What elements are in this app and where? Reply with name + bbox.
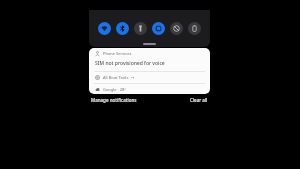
staticText: Manage notifications: [91, 97, 137, 103]
button[interactable]: Bluetooth: [116, 22, 129, 35]
button[interactable]: Manage notifications: [89, 94, 139, 106]
staticText: →: [131, 75, 135, 80]
button[interactable]: Flashlight: [134, 22, 147, 35]
button[interactable]: Wi-Fi: [98, 22, 111, 35]
button[interactable]: All Boot Tools: [89, 72, 210, 83]
button[interactable]: Google · 28°: [89, 84, 210, 94]
staticText: Phone Services: [103, 51, 132, 56]
staticText: SIM not provisioned for voice: [95, 60, 165, 67]
button[interactable]: Clear all: [188, 94, 210, 106]
staticText: Clear all: [190, 97, 208, 103]
button[interactable]: Battery saver: [188, 22, 201, 35]
button[interactable]: Do not disturb: [170, 22, 183, 35]
staticText: All Boot Tools: [103, 75, 129, 80]
button[interactable]: Phone Services: [89, 48, 210, 71]
staticText: Google · 28°: [103, 87, 126, 92]
button[interactable]: Auto rotate: [152, 22, 165, 35]
